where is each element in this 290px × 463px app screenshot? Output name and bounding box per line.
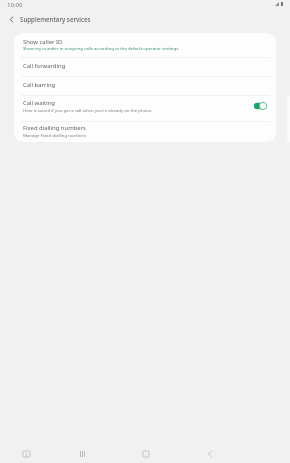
staticText: 10:00 <box>7 1 23 9</box>
staticText: Manage Fixed dialling numbers <box>23 132 87 138</box>
button[interactable]: Home <box>133 441 159 463</box>
button[interactable]: Call forwarding <box>14 58 276 76</box>
staticText: Fixed dialling numbers <box>23 124 86 132</box>
button[interactable]: Call barring <box>14 77 276 95</box>
staticText: Call barring <box>23 81 56 89</box>
button[interactable]: Show caller ID <box>14 33 276 57</box>
button[interactable]: Fixed dialling numbers <box>14 122 276 142</box>
button[interactable]: Back <box>197 441 223 463</box>
button[interactable]: Navigate up <box>4 12 18 26</box>
staticText: Call waiting <box>23 99 55 107</box>
button[interactable]: Recent apps <box>69 441 95 463</box>
staticText: Supplementary services <box>20 15 91 23</box>
staticText: Call forwarding <box>23 62 66 70</box>
staticText: Show my number in outgoing calls accordi… <box>23 45 180 51</box>
staticText: Hear a sound if you get a call when you'… <box>23 107 153 113</box>
button[interactable]: Call waiting, on <box>254 102 267 110</box>
staticText: Show caller ID <box>23 38 63 46</box>
button[interactable]: Hide keyboard <box>13 441 39 463</box>
button[interactable]: Call waiting <box>14 96 276 121</box>
